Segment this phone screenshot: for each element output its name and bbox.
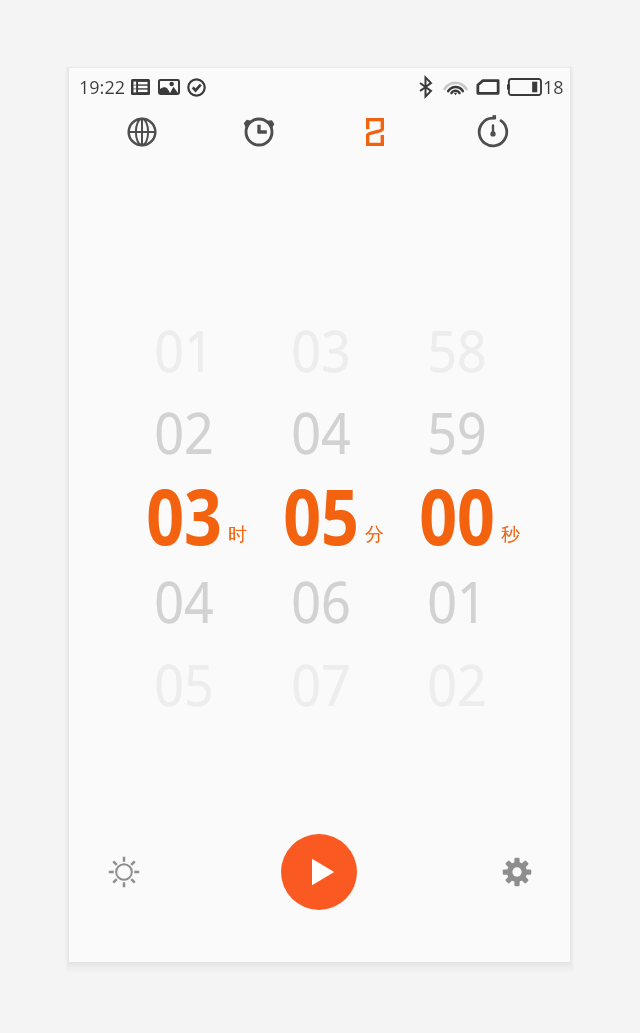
button[interactable]: Minutes 06 <box>253 561 389 643</box>
staticText: 03 <box>146 463 223 568</box>
staticText: 59 <box>427 394 488 470</box>
staticText: 02 <box>427 646 488 722</box>
staticText: 时 <box>228 523 247 547</box>
staticText: 04 <box>154 563 215 639</box>
button[interactable]: Minutes <box>253 476 389 560</box>
staticText: 02 <box>154 394 215 470</box>
button[interactable]: Seconds 59 <box>389 392 525 474</box>
staticText: 秒 <box>501 523 520 547</box>
button[interactable]: Hours 04 <box>116 561 252 643</box>
button[interactable]: Seconds 01 <box>389 561 525 643</box>
button[interactable]: Start timer <box>281 834 357 910</box>
staticText: 分 <box>365 523 384 547</box>
staticText: 03 <box>291 312 352 388</box>
staticText: 19:22 <box>79 75 126 100</box>
button[interactable]: Minutes 04 <box>253 392 389 474</box>
staticText: 01 <box>154 312 215 388</box>
button[interactable]: Seconds 02 <box>389 644 525 726</box>
button[interactable]: Seconds 58 <box>389 310 525 392</box>
button[interactable]: Hours 05 <box>116 644 252 726</box>
button[interactable]: Timer <box>347 104 403 160</box>
button[interactable]: Hours 01 <box>116 310 252 392</box>
staticText: 01 <box>427 563 488 639</box>
button[interactable]: Seconds <box>389 476 525 560</box>
staticText: 18 <box>543 75 564 100</box>
staticText: 07 <box>291 646 352 722</box>
button[interactable]: Settings <box>491 846 543 898</box>
staticText: 04 <box>291 394 352 470</box>
staticText: 05 <box>154 646 215 722</box>
staticText: 05 <box>283 463 360 568</box>
button[interactable]: Brightness <box>98 846 150 898</box>
staticText: 58 <box>427 312 488 388</box>
staticText: 00 <box>419 463 496 568</box>
button[interactable]: Hours <box>116 476 252 560</box>
button[interactable]: Alarm <box>231 104 287 160</box>
button[interactable]: Minutes 03 <box>253 310 389 392</box>
button[interactable]: Minutes 07 <box>253 644 389 726</box>
button[interactable]: Stopwatch <box>465 104 521 160</box>
button[interactable]: World clock <box>114 104 170 160</box>
button[interactable]: Hours 02 <box>116 392 252 474</box>
staticText: 06 <box>291 563 352 639</box>
